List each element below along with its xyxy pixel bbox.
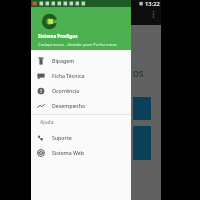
staticText: ÚLTIMAS OS: [95, 68, 144, 79]
button[interactable]: Bipagem: [31, 53, 131, 68]
button[interactable]: More options: [148, 9, 159, 20]
button[interactable]: Sistema Web: [31, 145, 131, 160]
staticText: Suporte: [52, 134, 72, 141]
staticText: Ocorrência: [52, 87, 80, 94]
staticText: Ficha Técnica: [52, 72, 85, 79]
staticText: Codaprocess - Gestão para Performace: [38, 41, 117, 47]
button[interactable]: Desempenho: [31, 98, 131, 113]
staticText: Sistema Web: [52, 149, 84, 156]
button[interactable]: Suporte: [31, 130, 131, 145]
staticText: Desempenho: [52, 102, 86, 109]
staticText: Ajuda: [40, 119, 54, 126]
staticText: Sistema Prodigus: [38, 33, 78, 39]
button[interactable]: Ocorrência: [31, 83, 131, 98]
staticText: 13:22: [145, 0, 160, 8]
staticText: Bipagem: [52, 57, 75, 64]
button[interactable]: Ficha Técnica: [31, 68, 131, 83]
